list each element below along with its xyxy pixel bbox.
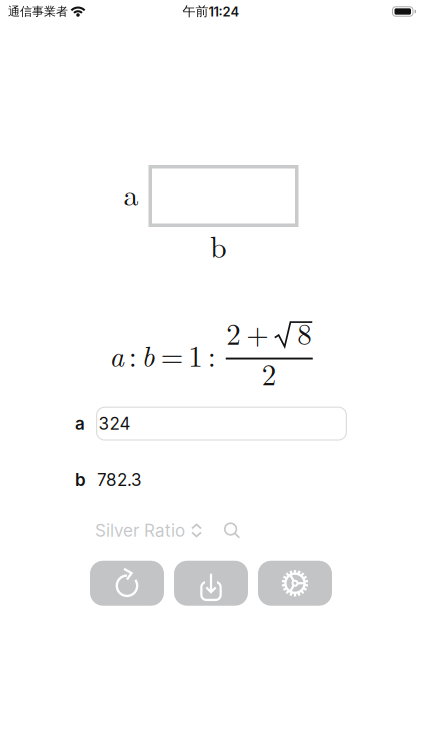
staticText: + bbox=[246, 312, 269, 353]
button[interactable]: Save bbox=[174, 561, 248, 606]
staticText: : bbox=[208, 334, 216, 375]
staticText: 通信事業者 bbox=[8, 4, 68, 19]
button[interactable]: Silver Ratio bbox=[95, 520, 202, 541]
staticText: : bbox=[129, 334, 137, 375]
staticText: a bbox=[75, 413, 85, 434]
button[interactable]: Search bbox=[224, 522, 240, 538]
staticText: 782.3 bbox=[97, 470, 142, 490]
staticText: a bbox=[123, 172, 138, 214]
staticText: 8 bbox=[297, 312, 312, 353]
staticText: Silver Ratio bbox=[95, 520, 185, 541]
staticText: b bbox=[141, 334, 154, 375]
staticText: 324 bbox=[98, 413, 130, 434]
staticText: 1 bbox=[188, 334, 203, 375]
staticText: b bbox=[210, 224, 227, 266]
staticText: 2 bbox=[262, 352, 277, 394]
button[interactable]: a value bbox=[96, 407, 347, 441]
button[interactable]: Settings bbox=[258, 561, 332, 606]
staticText: a bbox=[109, 334, 124, 375]
staticText: b bbox=[75, 470, 86, 490]
staticText: 午前11:24 bbox=[182, 3, 239, 20]
button[interactable]: Reload bbox=[90, 561, 164, 606]
staticText: 2 bbox=[226, 312, 241, 353]
staticText: = bbox=[161, 334, 184, 375]
